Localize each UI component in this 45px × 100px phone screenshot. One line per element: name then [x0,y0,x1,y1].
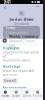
button[interactable]: Alerts [21,88,32,100]
button[interactable]: Weekly summary [0,37,43,44]
button[interactable]: Profile [32,88,43,100]
staticText: Highlights [2,46,19,50]
staticText: 3 new updates [5,30,27,34]
staticText: Search [12,94,20,98]
staticText: Share the report with your team [2,69,34,77]
staticText: Alerts [23,94,31,98]
staticText: Engagement rose across all [2,50,38,58]
staticText: channels this week. [2,58,31,62]
staticText: Home [1,94,9,98]
button[interactable]: More [34,4,40,10]
staticText: @jordanb [14,22,29,26]
staticText: View all [4,79,16,83]
staticText: Weekly summary [9,34,38,39]
button[interactable]: Back [2,4,7,10]
button[interactable]: Home [0,88,11,100]
staticText: 9:41 [3,0,10,5]
staticText: Recent activity [2,85,26,90]
staticText: ‹ [4,2,6,11]
staticText: Today [5,25,15,30]
staticText: Updated 2 hours ago [9,39,34,47]
staticText: Profile [33,94,43,98]
button[interactable]: View all [2,78,18,83]
staticText: Jordan Blake [9,16,33,22]
staticText: Tap to review [5,35,24,39]
button[interactable]: Search [11,88,22,100]
staticText: ••• [36,4,39,9]
staticText: Next steps [2,64,20,69]
